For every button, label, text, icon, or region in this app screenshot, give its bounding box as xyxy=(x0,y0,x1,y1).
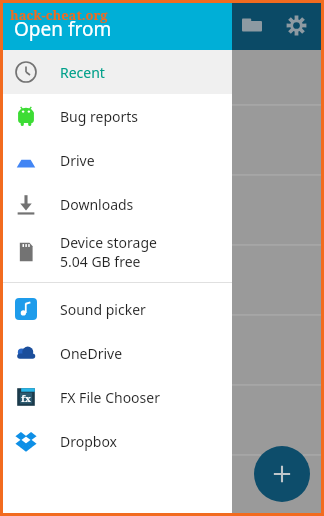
button[interactable]: Sound picker xyxy=(0,287,232,331)
button[interactable]: Downloads xyxy=(0,182,232,226)
staticText: Recent xyxy=(60,63,105,82)
button[interactable]: Device storage xyxy=(0,226,232,278)
button[interactable]: New folder xyxy=(232,5,272,45)
staticText: 5.04 GB free xyxy=(60,252,141,271)
staticText: FX File Chooser xyxy=(60,388,160,407)
staticText: Open from xyxy=(14,16,112,42)
staticText: OneDrive xyxy=(60,344,123,363)
staticText: Downloads xyxy=(60,195,134,214)
staticText: fx xyxy=(21,392,31,404)
staticText: Sound picker xyxy=(60,300,146,319)
button[interactable]: Settings xyxy=(276,5,316,45)
button[interactable]: Drive xyxy=(0,138,232,182)
button[interactable]: fx xyxy=(0,375,232,419)
staticText: hack-cheat.org xyxy=(10,6,108,24)
button[interactable]: Recent xyxy=(0,50,232,94)
button[interactable]: OneDrive xyxy=(0,331,232,375)
staticText: Bug reports xyxy=(60,107,139,126)
staticText: Dropbox xyxy=(60,432,118,451)
staticText: Drive xyxy=(60,151,95,170)
staticText: Device storage xyxy=(60,233,157,252)
button[interactable]: Bug reports xyxy=(0,94,232,138)
button[interactable]: Dropbox xyxy=(0,419,232,463)
button[interactable]: Add xyxy=(254,446,310,502)
